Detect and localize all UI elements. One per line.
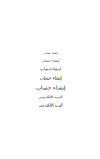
staticText: إنشاء حساب xyxy=(41,59,59,63)
staticText: إنشاء حساب xyxy=(39,67,60,71)
staticText: البريد الإلكتروني xyxy=(38,103,62,107)
staticText: إنشاء حساب xyxy=(35,85,64,91)
staticText: البريد الإلكتروني xyxy=(38,95,62,99)
staticText: إنشاء حساب xyxy=(39,75,61,81)
staticText: إنشاء حساب xyxy=(42,52,57,55)
